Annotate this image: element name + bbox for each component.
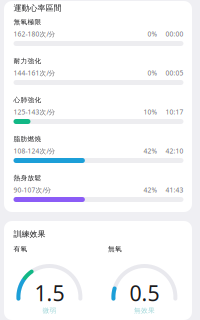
staticText: 0.5 xyxy=(130,279,160,307)
staticText: 脂肪燃燒 xyxy=(13,135,41,143)
staticText: 心肺強化 xyxy=(13,96,41,104)
staticText: 0% xyxy=(147,69,157,77)
staticText: 10:17 xyxy=(165,108,183,116)
staticText: 42% xyxy=(143,147,157,155)
staticText: 90-107次/分 xyxy=(13,186,51,194)
staticText: 無效果 xyxy=(134,306,155,315)
staticText: 41:43 xyxy=(165,186,183,194)
staticText: 125-143次/分 xyxy=(13,108,55,116)
staticText: 108-124次/分 xyxy=(13,147,55,155)
staticText: 0% xyxy=(147,30,157,38)
staticText: 耐力強化 xyxy=(13,57,41,65)
staticText: 42:10 xyxy=(165,147,183,155)
staticText: 運動心率區間 xyxy=(13,3,61,13)
staticText: 00:05 xyxy=(165,69,183,77)
staticText: 有氧 xyxy=(13,245,27,253)
staticText: 10% xyxy=(143,108,157,116)
staticText: 無氧 xyxy=(108,245,122,253)
staticText: 162-180次/分 xyxy=(13,30,55,38)
staticText: 1.5 xyxy=(35,279,65,307)
staticText: 42% xyxy=(143,186,157,194)
staticText: 訓練效果 xyxy=(13,229,45,239)
staticText: 00:00 xyxy=(165,30,183,38)
staticText: 熱身放鬆 xyxy=(13,174,41,182)
staticText: 144-161次/分 xyxy=(13,69,55,77)
staticText: 無氧極限 xyxy=(13,18,41,26)
staticText: 微弱 xyxy=(43,306,57,315)
